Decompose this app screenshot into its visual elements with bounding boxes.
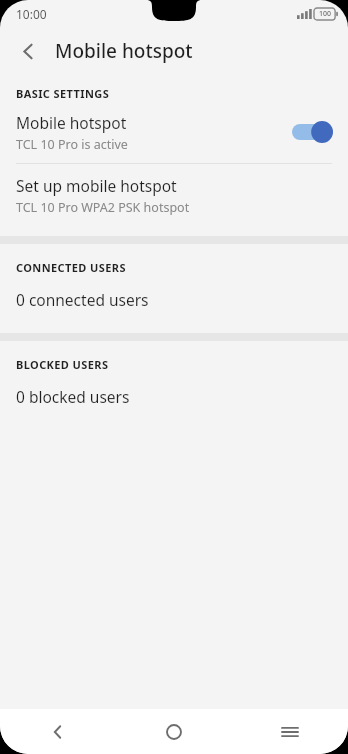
staticText: 100 (319, 9, 332, 19)
staticText: Set up mobile hotspot (16, 175, 177, 196)
staticText: BASIC SETTINGS (16, 86, 348, 101)
button[interactable]: 0 blocked users (0, 372, 348, 420)
staticText: 0 blocked users (16, 386, 130, 407)
button[interactable]: Mobile hotspot toggle (292, 119, 334, 145)
staticText: CONNECTED USERS (16, 260, 348, 275)
button[interactable]: 0 connected users (0, 275, 348, 323)
button[interactable]: Recent apps (232, 709, 348, 754)
staticText: 0 connected users (16, 289, 149, 310)
button[interactable]: Home (116, 709, 232, 754)
button[interactable]: Back (0, 709, 116, 754)
staticText: BLOCKED USERS (16, 357, 348, 372)
staticText: TCL 10 Pro WPA2 PSK hotspot (16, 199, 190, 216)
staticText: Mobile hotspot (55, 38, 193, 64)
staticText: TCL 10 Pro is active (16, 136, 128, 153)
button[interactable]: Back (8, 31, 48, 71)
button[interactable]: Set up mobile hotspot (0, 164, 348, 226)
staticText: Mobile hotspot (16, 112, 127, 133)
staticText: 10:00 (16, 6, 47, 22)
button[interactable]: Mobile hotspot (0, 101, 348, 163)
